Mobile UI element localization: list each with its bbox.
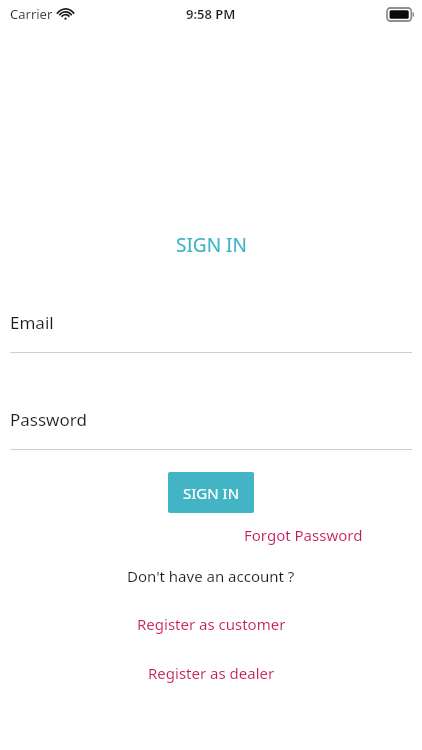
staticText: Register as customer (137, 614, 286, 634)
button[interactable]: Email (0, 306, 422, 338)
button[interactable]: Forgot Password (242, 522, 365, 548)
staticText: Password (10, 408, 87, 431)
button[interactable]: Password (0, 403, 422, 435)
button[interactable]: Register as dealer (142, 660, 281, 686)
staticText: Don't have an account ? (127, 566, 295, 586)
button[interactable]: SIGN IN (168, 472, 254, 513)
staticText: 9:58 PM (186, 5, 236, 23)
button[interactable]: Register as customer (131, 611, 292, 637)
staticText: Carrier (10, 5, 53, 23)
staticText: Email (10, 311, 54, 334)
staticText: Forgot Password (244, 525, 363, 545)
staticText: SIGN IN (176, 232, 247, 258)
staticText: SIGN IN (183, 483, 240, 503)
staticText: Register as dealer (148, 663, 275, 683)
